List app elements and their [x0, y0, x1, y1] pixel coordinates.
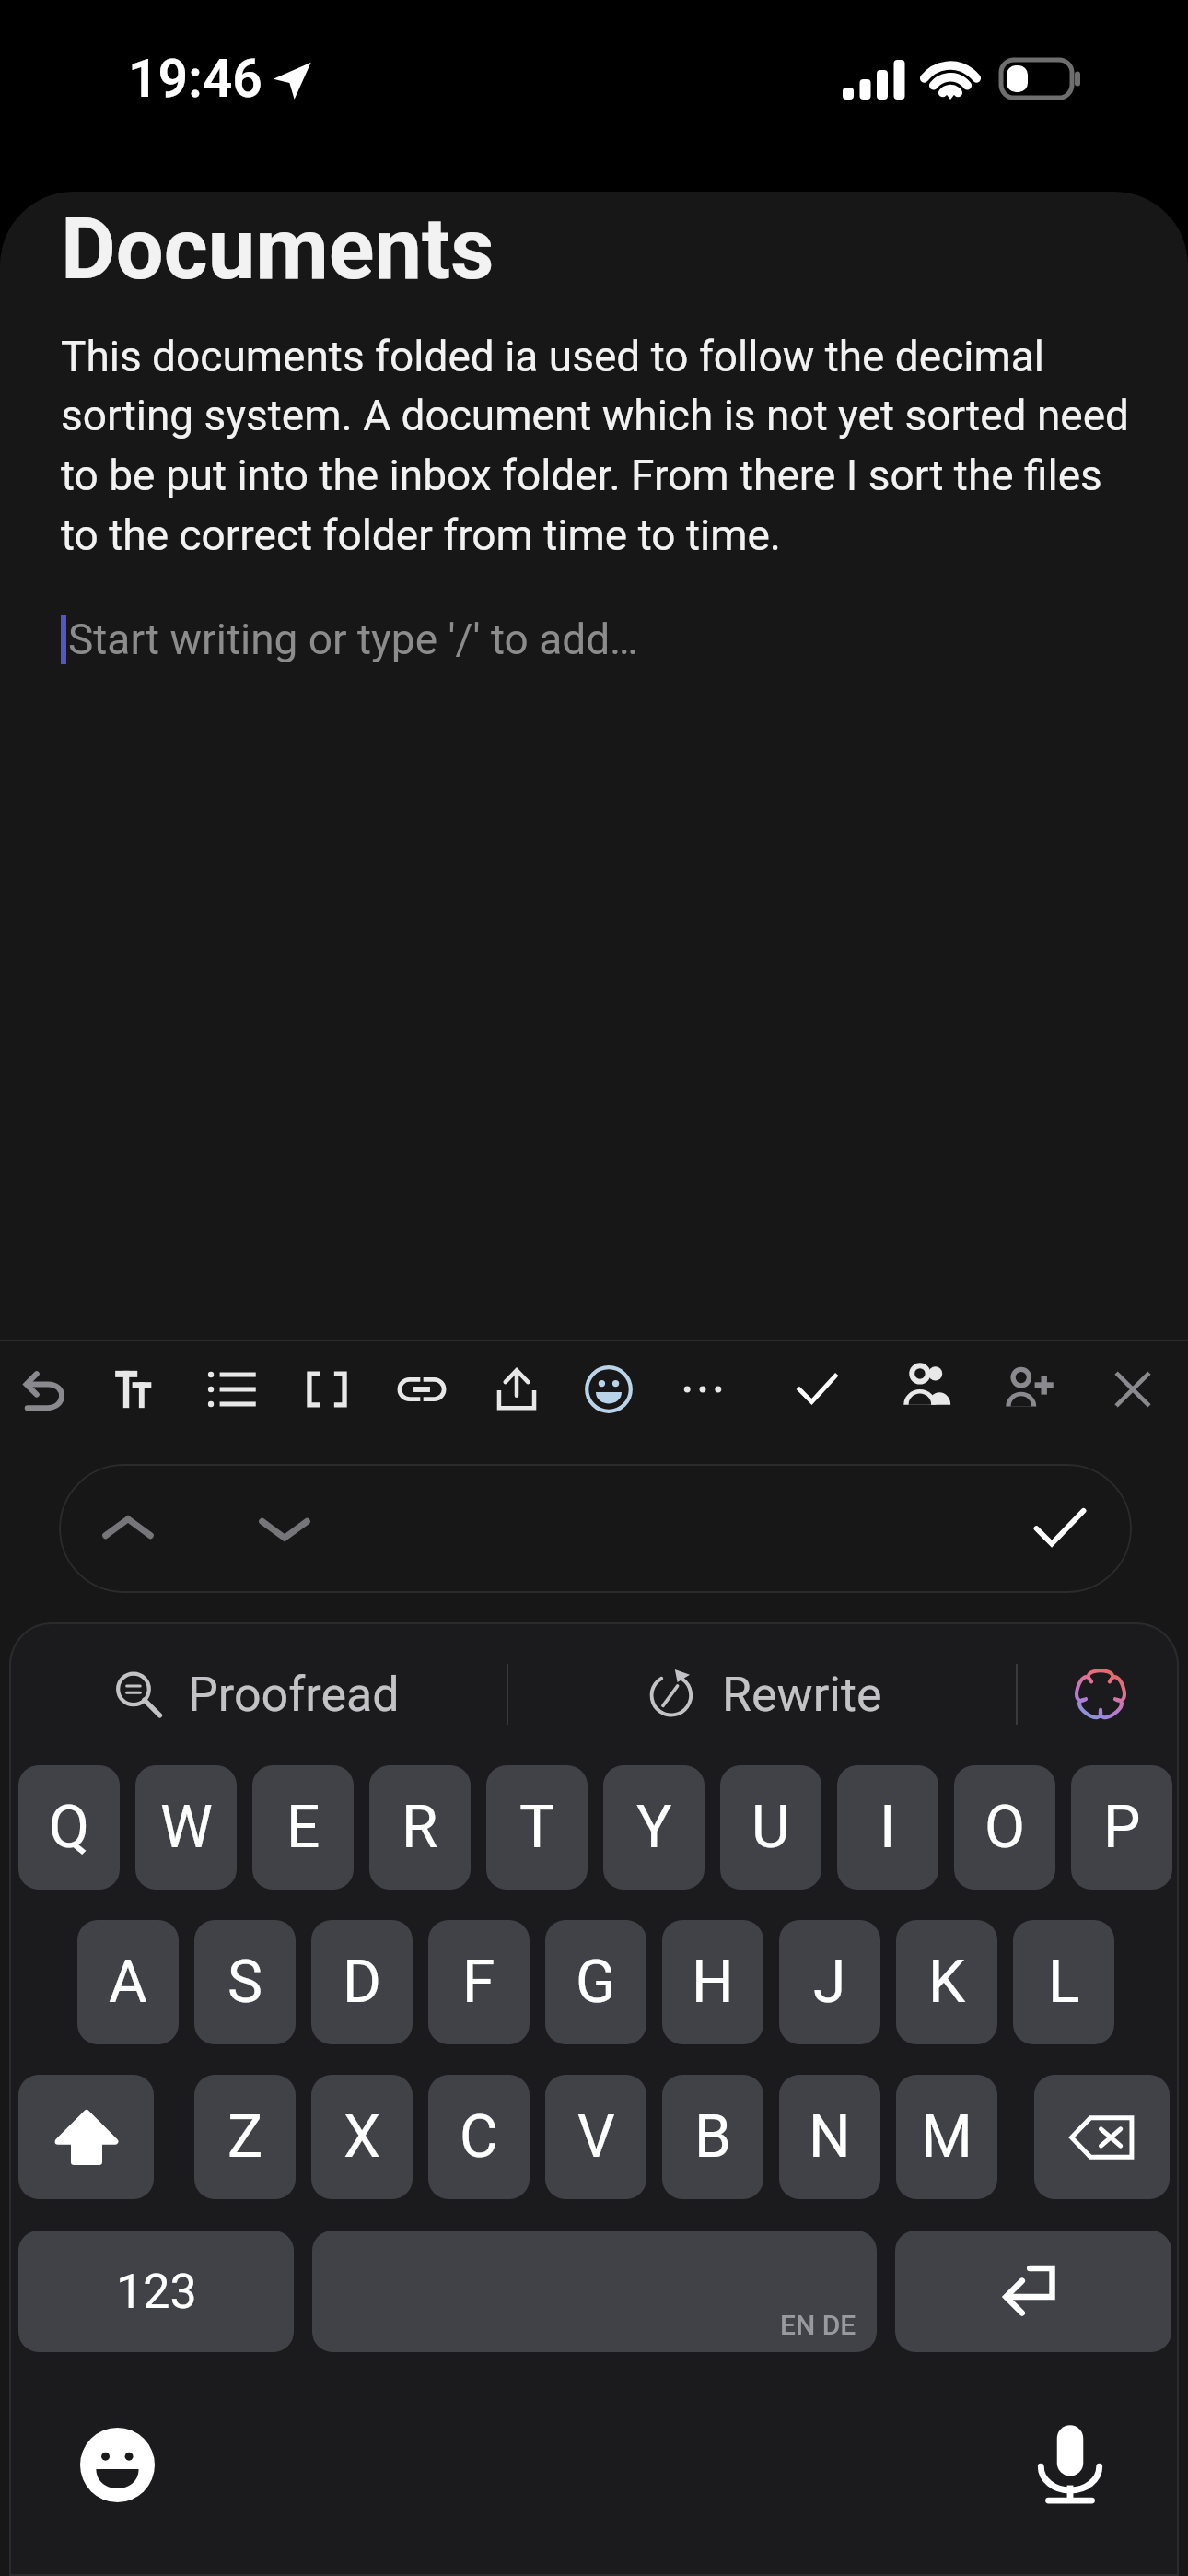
button[interactable]: I — [837, 1765, 938, 1890]
button[interactable]: D — [311, 1920, 413, 2044]
staticText: Z — [227, 2102, 263, 2172]
button[interactable]: F — [428, 1920, 530, 2044]
staticText: W — [160, 1793, 213, 1862]
button[interactable]: More — [658, 1334, 747, 1445]
button[interactable]: Done — [773, 1334, 861, 1445]
staticText: O — [984, 1793, 1026, 1862]
button[interactable]: Emoji keyboard — [57, 2405, 177, 2524]
button[interactable]: G — [545, 1920, 646, 2044]
button[interactable]: Code block — [283, 1334, 371, 1445]
button[interactable]: W — [135, 1765, 237, 1890]
button[interactable]: Proofread — [112, 1653, 400, 1736]
button[interactable]: K — [896, 1920, 997, 2044]
button[interactable]: Rewrite — [646, 1653, 882, 1736]
button[interactable]: Space — [312, 2231, 877, 2352]
button[interactable]: Text format — [96, 1334, 184, 1445]
button[interactable]: Backspace — [1034, 2075, 1170, 2199]
button[interactable]: U — [720, 1765, 821, 1890]
staticText: Documents — [61, 200, 495, 299]
button[interactable]: M — [896, 2075, 997, 2199]
staticText: D — [343, 1948, 381, 2017]
staticText: M — [921, 2102, 973, 2172]
button[interactable]: Return — [895, 2231, 1171, 2352]
button[interactable]: A — [77, 1920, 179, 2044]
button[interactable]: Collaborators — [883, 1334, 972, 1445]
staticText: N — [809, 2102, 851, 2172]
button[interactable]: Emoji — [565, 1334, 653, 1445]
button[interactable]: Bullet list — [188, 1334, 276, 1445]
staticText: I — [879, 1793, 896, 1862]
button[interactable]: Q — [18, 1765, 120, 1890]
button[interactable]: L — [1013, 1920, 1114, 2044]
staticText: F — [462, 1948, 495, 2017]
button[interactable]: 123 — [18, 2231, 294, 2352]
staticText: G — [576, 1948, 616, 2017]
button[interactable]: Link — [378, 1334, 466, 1445]
button[interactable]: C — [428, 2075, 530, 2199]
staticText: X — [344, 2102, 381, 2172]
button[interactable]: V — [545, 2075, 646, 2199]
button[interactable]: Next — [233, 1477, 336, 1580]
button[interactable]: Z — [194, 2075, 296, 2199]
button[interactable]: Add person — [985, 1334, 1074, 1445]
button[interactable]: Shift — [18, 2075, 154, 2199]
staticText: A — [109, 1948, 147, 2017]
staticText: Y — [636, 1793, 672, 1862]
button[interactable]: P — [1071, 1765, 1172, 1890]
button[interactable]: Close — [1089, 1334, 1177, 1445]
button[interactable]: Confirm — [1008, 1477, 1112, 1580]
staticText: B — [694, 2102, 731, 2172]
button[interactable]: B — [662, 2075, 763, 2199]
button[interactable]: Share — [472, 1334, 561, 1445]
staticText: 19:46 — [128, 48, 262, 110]
staticText: P — [1103, 1793, 1141, 1862]
staticText: EN DE — [780, 2309, 856, 2341]
button[interactable]: S — [194, 1920, 296, 2044]
staticText: Proofread — [188, 1667, 400, 1723]
staticText: L — [1048, 1948, 1080, 2017]
button[interactable]: H — [662, 1920, 763, 2044]
button[interactable]: T — [486, 1765, 588, 1890]
staticText: Rewrite — [722, 1667, 882, 1723]
staticText: U — [751, 1793, 790, 1862]
button[interactable]: Y — [603, 1765, 705, 1890]
staticText: E — [286, 1793, 320, 1862]
button[interactable]: O — [954, 1765, 1055, 1890]
staticText: C — [460, 2102, 498, 2172]
staticText: R — [402, 1793, 438, 1862]
staticText: 123 — [116, 2264, 197, 2320]
staticText: This documents folded ia used to follow … — [61, 332, 1143, 561]
staticText: K — [928, 1948, 966, 2017]
button[interactable]: E — [252, 1765, 354, 1890]
staticText: S — [227, 1948, 262, 2017]
staticText: V — [577, 2102, 615, 2172]
button[interactable]: N — [779, 2075, 880, 2199]
button[interactable]: Apple Intelligence — [1056, 1650, 1145, 1739]
button[interactable]: Undo — [3, 1334, 91, 1445]
staticText: Start writing or type '/' to add… — [68, 615, 638, 664]
button[interactable]: Dictation — [1010, 2405, 1130, 2524]
staticText: Q — [49, 1793, 90, 1862]
staticText: J — [813, 1948, 846, 2017]
staticText: H — [692, 1948, 734, 2017]
button[interactable]: R — [369, 1765, 471, 1890]
button[interactable]: X — [311, 2075, 413, 2199]
staticText: T — [519, 1793, 555, 1862]
button[interactable]: Previous — [76, 1477, 180, 1580]
button[interactable]: J — [779, 1920, 880, 2044]
